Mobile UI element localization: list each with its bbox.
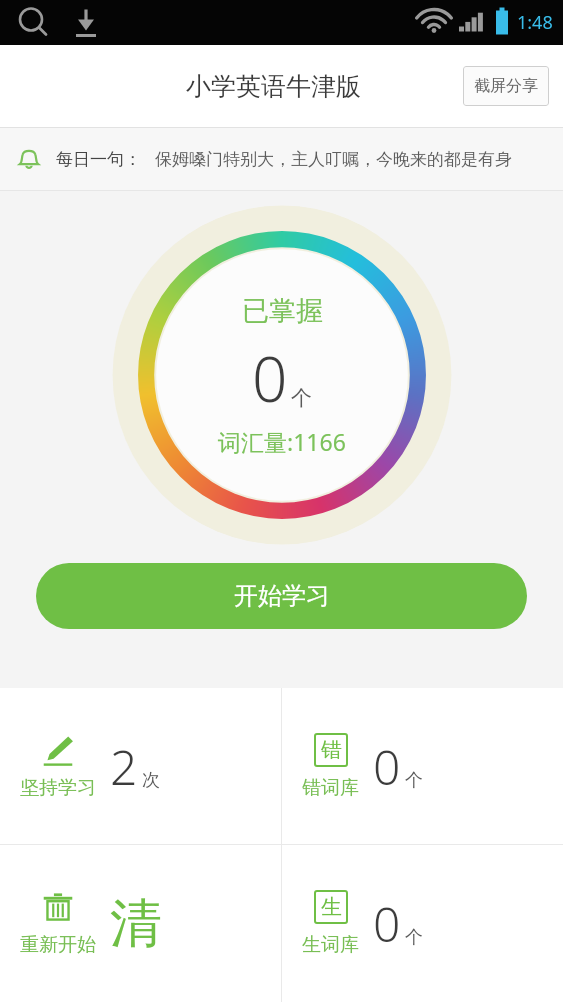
staticText: 0 <box>252 336 288 420</box>
staticText: 小学英语牛津版 <box>186 71 361 102</box>
staticText: 错 <box>321 737 342 763</box>
staticText: 个 <box>405 769 423 792</box>
button[interactable]: 每日一句 <box>0 128 563 190</box>
staticText: 0 <box>373 891 401 956</box>
button[interactable]: 生词库 <box>282 845 563 1002</box>
staticText: 生 <box>321 894 342 920</box>
staticText: 生词库 <box>302 933 359 957</box>
staticText: 保姆嗓门特别大，主人叮嘱，今晚来的都是有身 <box>155 149 512 170</box>
other: 每日一句 <box>16 146 42 172</box>
staticText: 开始学习 <box>234 581 330 611</box>
button[interactable]: 截屏分享 <box>463 66 549 106</box>
staticText: 每日一句： <box>56 149 141 170</box>
other: 生词库 <box>314 890 348 924</box>
other: 重新开始 <box>41 890 75 924</box>
button[interactable]: 坚持学习 <box>0 688 281 844</box>
staticText: 2 <box>110 734 138 799</box>
staticText: 坚持学习 <box>20 776 96 800</box>
staticText: 次 <box>142 769 160 792</box>
button[interactable]: 重新开始 <box>0 845 281 1002</box>
other: 坚持学习 <box>41 733 75 767</box>
staticText: 已掌握 <box>242 294 323 328</box>
other: 错词库 <box>314 733 348 767</box>
button[interactable]: 错词库 <box>282 688 563 844</box>
staticText: 1:48 <box>517 10 553 35</box>
staticText: 0 <box>373 734 401 799</box>
staticText: 截屏分享 <box>474 76 538 96</box>
staticText: 重新开始 <box>20 933 96 957</box>
staticText: 词汇量:1166 <box>218 426 346 457</box>
staticText: 清 <box>110 891 162 957</box>
button[interactable]: 开始学习 <box>36 563 527 629</box>
staticText: 错词库 <box>302 776 359 800</box>
staticText: 个 <box>405 926 423 949</box>
staticText: 个 <box>291 385 312 411</box>
